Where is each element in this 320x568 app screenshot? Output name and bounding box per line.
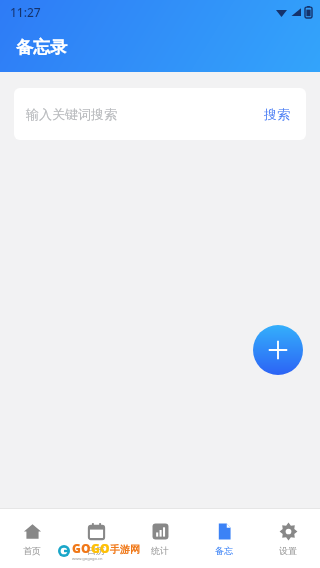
staticText: 设置 bbox=[279, 545, 297, 556]
staticText: 搜索 bbox=[264, 106, 290, 122]
staticText: 备忘 bbox=[215, 545, 233, 556]
staticText: 统计 bbox=[151, 545, 169, 556]
button[interactable]: 设置 bbox=[256, 516, 320, 562]
staticText: 11:27 bbox=[10, 4, 41, 20]
button[interactable]: 日历 bbox=[64, 516, 128, 562]
button[interactable]: 搜索 bbox=[248, 92, 306, 136]
staticText: 输入关键词搜索 bbox=[26, 106, 117, 122]
staticText: 首页 bbox=[23, 545, 41, 556]
button[interactable]: Add note bbox=[253, 325, 303, 375]
button[interactable]: 输入关键词搜索 bbox=[14, 88, 306, 140]
button[interactable]: 统计 bbox=[128, 516, 192, 562]
staticText: www.gogogo.cn bbox=[72, 556, 103, 561]
staticText: GO bbox=[91, 540, 110, 556]
staticText: 日历 bbox=[87, 545, 105, 556]
staticText: 手游网 bbox=[110, 543, 140, 556]
button[interactable]: 备忘 bbox=[192, 516, 256, 562]
staticText: GO bbox=[72, 540, 91, 556]
staticText: 备忘录 bbox=[16, 37, 67, 58]
button[interactable]: 首页 bbox=[0, 516, 64, 562]
